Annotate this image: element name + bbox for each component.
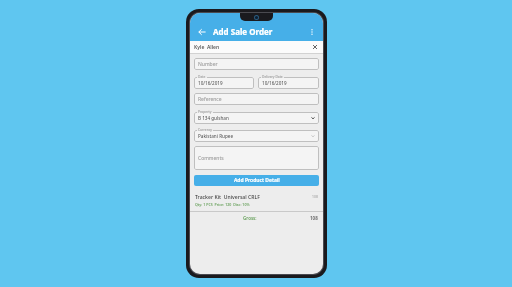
button[interactable]: Tracker Kit Universal CRLF [190, 192, 323, 209]
staticText: Date [198, 74, 206, 78]
staticText: Number [198, 61, 218, 68]
staticText: Gross: [243, 215, 257, 221]
staticText: Add Product Detail [234, 177, 280, 184]
button[interactable]: Add Product Detail [194, 175, 319, 186]
button[interactable]: Reference [194, 93, 319, 105]
staticText: Currency [198, 127, 212, 131]
button[interactable]: Kyle Allen [190, 41, 323, 53]
staticText: Tracker Kit Universal CRLF [195, 194, 260, 201]
staticText: B 134 gulshan [198, 115, 229, 121]
staticText: Qty: 1 PCS Price: 120 Disc: 10% [195, 202, 250, 207]
staticText: Delivery Date [262, 74, 283, 78]
staticText: 10/16/2019 [198, 80, 223, 86]
button[interactable]: Clear customer [311, 43, 319, 51]
button[interactable]: Number [194, 58, 319, 70]
button[interactable]: B 134 gulshan [194, 112, 319, 124]
button[interactable]: More options [304, 24, 319, 39]
button[interactable]: 10/16/2019 [194, 77, 254, 89]
staticText: Pakistani Rupee [198, 133, 234, 139]
staticText: Comments [198, 155, 224, 162]
staticText: 108 [312, 194, 318, 199]
staticText: Add Sale Order [213, 26, 273, 37]
staticText: Kyle Allen [194, 44, 220, 51]
button[interactable]: 10/16/2019 [258, 77, 319, 89]
button[interactable]: Back [194, 24, 209, 39]
staticText: 108 [310, 215, 318, 221]
button[interactable]: Pakistani Rupee [194, 130, 319, 142]
staticText: 10/16/2019 [262, 80, 287, 86]
staticText: Property [198, 109, 212, 113]
staticText: Reference [198, 96, 222, 103]
button[interactable]: Comments [194, 146, 319, 170]
